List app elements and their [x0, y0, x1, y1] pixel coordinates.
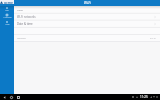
button[interactable]: Label [17, 6, 156, 13]
button[interactable]: Network [0, 13, 14, 20]
button[interactable]: Version [17, 34, 156, 41]
staticText: Wi-Fi networks [17, 15, 36, 19]
staticText: Wi-Fi [84, 1, 91, 5]
button[interactable]: Wi-Fi [14, 0, 160, 6]
staticText: Date & time [17, 22, 33, 26]
button[interactable] [17, 27, 156, 34]
button[interactable]: User [0, 20, 14, 27]
button[interactable]: Recents [15, 94, 21, 100]
button[interactable]: Tab [0, 6, 14, 13]
staticText: Label [17, 8, 24, 11]
staticText: Version [17, 36, 26, 39]
staticText: acme [4, 0, 14, 4]
staticText: 11:25 [140, 95, 148, 99]
staticText: Tab [5, 9, 9, 12]
staticText: User [5, 23, 10, 26]
button[interactable]: Wi-Fi networks [17, 13, 156, 20]
button[interactable]: Back [1, 94, 7, 100]
button[interactable]: Home [0, 0, 14, 4]
button[interactable]: Home [8, 94, 14, 100]
staticText: Network [3, 16, 12, 19]
button[interactable]: Date & time [17, 20, 156, 27]
staticText: 2.1.0 [150, 36, 156, 39]
